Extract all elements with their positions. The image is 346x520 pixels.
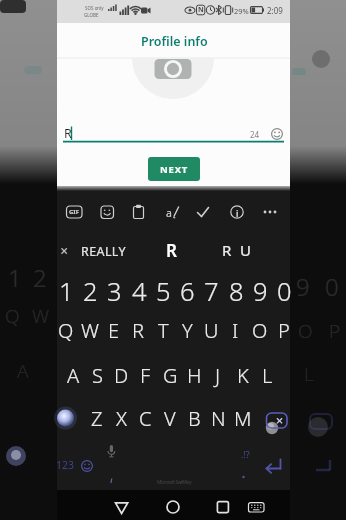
staticText: 3 [107,274,122,309]
button[interactable]: Y [162,304,212,356]
button[interactable]: I [210,304,260,356]
button[interactable] [246,496,268,518]
staticText: R [64,125,72,142]
button[interactable] [78,456,97,475]
staticText: GLOBE [84,12,99,18]
staticText: N [211,405,226,432]
button[interactable]: H [169,349,219,401]
staticText: P [278,317,290,344]
staticText: I [232,317,239,344]
button[interactable]: NEXT [148,157,200,181]
staticText: W [32,303,50,329]
button[interactable] [161,496,185,518]
button[interactable] [55,408,76,428]
button[interactable]: B [169,392,219,444]
staticText: Profile info [141,33,208,50]
staticText: L [304,361,314,387]
button[interactable]: N [193,392,243,444]
button[interactable] [228,203,246,221]
button[interactable]: R [148,227,195,273]
button[interactable]: 7 [183,260,239,323]
staticText: P [329,318,341,344]
button[interactable]: A [48,349,98,401]
button[interactable]: 3 [86,260,142,323]
staticText: 0 [325,270,339,303]
button[interactable] [195,203,213,221]
button[interactable]: GIF [50,200,98,224]
button[interactable]: 1 [38,260,94,323]
staticText: A [17,358,29,384]
staticText: 0 [277,274,292,309]
staticText: GIF [69,208,79,216]
button[interactable]: 2 [62,260,118,323]
button[interactable]: K [218,349,268,401]
staticText: 6 [180,274,195,309]
button[interactable] [110,496,134,518]
staticText: .!? [241,448,250,460]
staticText: X [116,405,127,432]
staticText: N [198,5,204,15]
button[interactable]: V [145,392,195,444]
staticText: 2 [33,261,47,294]
staticText: L [262,362,273,389]
staticText: G [163,362,178,389]
button[interactable]: J [193,349,243,401]
button[interactable] [130,203,148,221]
button[interactable]: D [96,349,146,401]
staticText: 8 [229,274,244,309]
button[interactable] [211,496,235,518]
button[interactable]: Q [41,304,91,356]
staticText: 5 [156,274,171,309]
staticText: 4 [132,274,147,309]
button[interactable]: L [242,349,292,401]
button[interactable]: 8 [208,260,264,323]
button[interactable]: a [148,196,189,229]
staticText: 24 [250,129,260,140]
staticText: 2 [83,274,98,309]
button[interactable]: 6 [159,260,215,323]
button[interactable] [268,125,286,143]
staticText: Z [91,405,103,432]
button[interactable]: 9 [232,260,288,323]
button[interactable]: 5 [135,260,191,323]
staticText: R [132,317,144,344]
staticText: SOS only [85,5,104,11]
button[interactable]: O [235,304,285,356]
button[interactable]: W [65,304,115,356]
button[interactable]: P [259,304,309,356]
button[interactable]: M [218,392,268,444]
button[interactable]: 0 [256,260,312,323]
button[interactable] [120,460,230,484]
staticText: Q [5,303,20,329]
button[interactable] [98,203,116,221]
staticText: 2:09 [267,5,283,16]
button[interactable]: 4 [111,260,167,323]
staticText: Y [182,317,193,344]
staticText: E [108,317,120,344]
button[interactable] [261,203,279,221]
button[interactable]: X [96,392,146,444]
button[interactable]: S [72,349,122,401]
button[interactable]: R [113,304,163,356]
staticText: O [252,317,268,344]
button[interactable]: REALLY [51,233,156,270]
staticText: W [81,317,99,344]
staticText: 1 [59,274,74,309]
button[interactable]: C [120,392,170,444]
button[interactable]: T [138,304,188,356]
button[interactable]: G [145,349,195,401]
staticText: O [298,318,313,344]
button[interactable]: U [186,304,236,356]
button[interactable]: 123 [34,448,96,481]
staticText: Q [58,317,74,344]
button[interactable] [264,410,288,430]
button[interactable]: E [89,304,139,356]
button[interactable]: F [120,349,170,401]
button[interactable]: .!? [217,439,274,469]
staticText: 7 [204,274,219,309]
button[interactable]: Z [72,392,122,444]
button[interactable] [100,442,122,460]
button[interactable] [262,456,288,476]
staticText: 9 [296,270,310,303]
button[interactable]: R [204,229,249,271]
